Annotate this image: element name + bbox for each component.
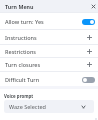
button[interactable]: Enabled <box>82 19 95 25</box>
button[interactable]: Disabled <box>82 77 95 83</box>
staticText: Voice prompt <box>4 93 34 99</box>
staticText: Waze Selected <box>9 103 46 110</box>
button[interactable]: Allow turn: Yes <box>0 13 98 29</box>
button[interactable]: Add <box>83 59 95 70</box>
staticText: Restrictions <box>5 48 36 55</box>
staticText: Turn Menu <box>5 3 34 10</box>
staticText: Difficult Turn <box>5 76 40 83</box>
button[interactable]: Restrictions <box>0 45 98 57</box>
button[interactable]: Difficult Turn <box>0 72 98 86</box>
staticText: Turn closures <box>5 61 41 68</box>
button[interactable]: Add <box>83 46 95 57</box>
button[interactable]: Voice prompt: Waze Selected <box>4 100 94 113</box>
button[interactable]: Turn closures <box>0 58 98 71</box>
button[interactable]: Add <box>83 32 95 43</box>
button[interactable]: Instructions <box>0 30 98 44</box>
staticText: Instructions <box>5 34 37 41</box>
button[interactable]: Close <box>91 4 96 9</box>
staticText: Allow turn: Yes <box>5 18 44 25</box>
